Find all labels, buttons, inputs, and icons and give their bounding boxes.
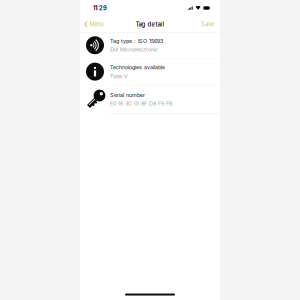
button[interactable]: Technologies available: [80, 58, 220, 85]
staticText: Save: [201, 21, 214, 28]
button[interactable]: Tag type : ISO 15693: [80, 32, 220, 58]
staticText: Menu: [89, 21, 103, 28]
staticText: EM Microelectronic: [110, 46, 158, 53]
button[interactable]: Serial number: [80, 85, 220, 114]
staticText: Type V: [110, 73, 128, 79]
staticText: Serial number: [110, 92, 145, 98]
staticText: E0 16 3C 01 8F D9 F9 FB: [110, 100, 173, 107]
staticText: Tag type : ISO 15693: [110, 38, 163, 44]
staticText: Technologies available: [110, 64, 165, 71]
button[interactable]: Menu: [84, 21, 103, 28]
staticText: 11:29: [93, 4, 107, 12]
button[interactable]: Save: [201, 21, 214, 28]
staticText: Tag detail: [135, 21, 164, 28]
